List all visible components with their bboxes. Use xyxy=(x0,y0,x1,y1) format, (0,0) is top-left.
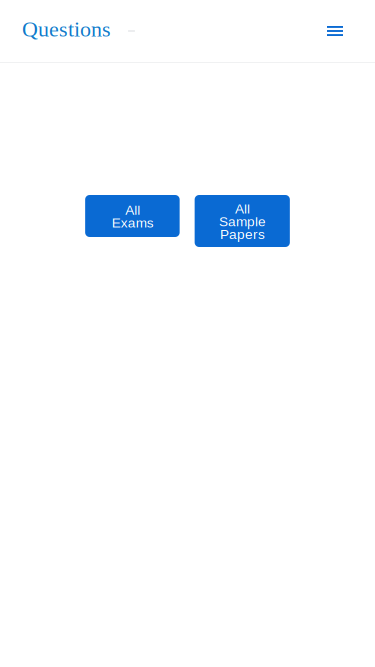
button[interactable]: All Exams xyxy=(85,195,180,237)
staticText: All Sample Papers xyxy=(219,201,266,242)
staticText: Questions xyxy=(22,17,111,41)
button[interactable]: Menu xyxy=(315,9,355,53)
button[interactable]: All Sample Papers xyxy=(195,195,290,247)
staticText: All Exams xyxy=(111,202,153,230)
